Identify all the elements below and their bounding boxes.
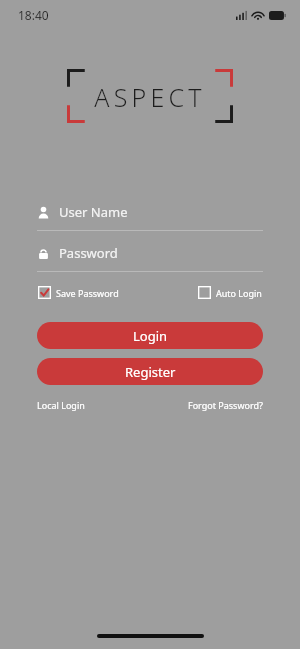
button[interactable]: Local Login: [37, 396, 85, 414]
button[interactable]: Forgot Password?: [188, 396, 263, 414]
staticText: Save Password: [56, 287, 119, 299]
staticText: Auto Login: [216, 287, 262, 299]
staticText: Password: [59, 244, 118, 262]
staticText: 18:40: [18, 7, 49, 23]
staticText: Forgot Password?: [188, 399, 263, 411]
button[interactable]: Register: [37, 358, 263, 385]
staticText: Local Login: [37, 399, 85, 411]
staticText: Login: [133, 327, 168, 345]
button[interactable]: Login: [37, 322, 263, 349]
button[interactable]: Save Password: [37, 282, 120, 303]
button[interactable]: Auto Login: [197, 282, 263, 303]
staticText: User Name: [59, 203, 128, 221]
staticText: ASPECT: [94, 80, 206, 114]
staticText: Register: [125, 363, 176, 381]
